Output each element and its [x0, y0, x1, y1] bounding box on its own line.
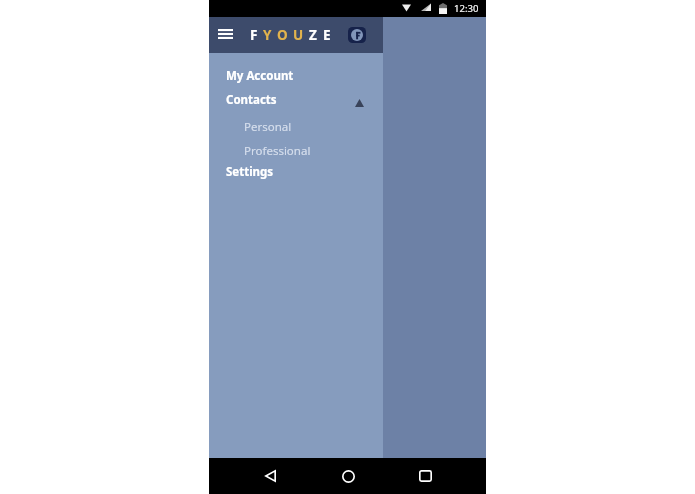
staticText: Personal	[244, 119, 292, 135]
staticText: My Account	[226, 68, 294, 84]
staticText: Z	[309, 26, 323, 44]
staticText: Contacts	[226, 92, 277, 108]
staticText: F	[250, 26, 263, 44]
button[interactable]: My Account	[209, 64, 383, 88]
button[interactable]: Recent apps	[410, 461, 440, 491]
staticText: Professional	[244, 143, 311, 159]
button[interactable]: Professional	[209, 136, 383, 160]
staticText: Y	[263, 26, 277, 44]
button[interactable]: Contacts	[209, 88, 383, 112]
staticText: U	[293, 26, 309, 44]
button[interactable]: Back	[255, 461, 285, 491]
button[interactable]: Home	[333, 461, 363, 491]
staticText: O	[277, 26, 293, 44]
button[interactable]: Personal	[209, 112, 383, 136]
staticText: E	[323, 26, 336, 44]
staticText: 12:30	[454, 2, 479, 15]
button[interactable]: Open navigation menu	[217, 24, 234, 46]
staticText: Settings	[226, 164, 274, 180]
button[interactable]: App logo	[348, 27, 366, 43]
button[interactable]: Settings	[209, 160, 383, 184]
